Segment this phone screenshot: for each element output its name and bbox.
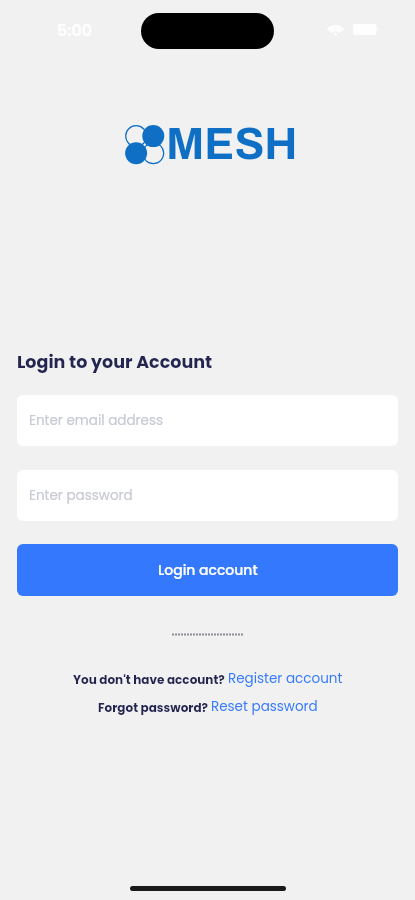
staticText: You don't have account? (73, 671, 228, 688)
staticText: Login account (158, 560, 258, 580)
staticText: 5:00 (57, 19, 93, 41)
staticText: MESH (166, 120, 298, 168)
button[interactable]: Enter email address (17, 395, 398, 446)
button[interactable]: Login account (17, 544, 398, 596)
staticText: Enter email address (29, 411, 164, 430)
button[interactable]: Enter password (17, 470, 398, 521)
other: Wi-Fi (327, 22, 344, 35)
button[interactable]: Reset password (211, 697, 318, 716)
button[interactable]: Register account (228, 669, 343, 688)
staticText: Register account (228, 669, 343, 688)
other: Battery (353, 24, 379, 35)
staticText: Login to your Account (17, 350, 213, 375)
staticText: Enter password (29, 486, 133, 505)
staticText: Reset password (211, 697, 318, 716)
staticText: Forgot password? (98, 699, 211, 716)
